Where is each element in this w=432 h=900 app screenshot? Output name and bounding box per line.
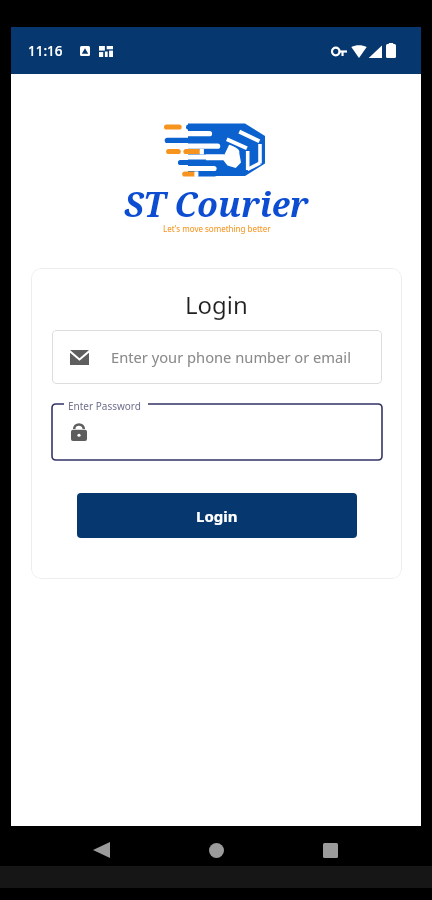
staticText: Enter Password — [68, 399, 141, 413]
staticText: Login — [196, 506, 238, 526]
staticText: Enter your phone number or email — [111, 347, 351, 367]
button[interactable]: Login — [77, 493, 357, 538]
button[interactable]: Back — [77, 826, 125, 874]
button[interactable]: Enter your phone number or email — [52, 330, 382, 384]
staticText: ST Courier — [124, 181, 309, 227]
button[interactable]: Recent apps — [306, 826, 354, 874]
button[interactable]: Home — [192, 826, 240, 874]
staticText: Login — [185, 288, 248, 321]
staticText: Let's move something better — [163, 223, 271, 234]
staticText: 11:16 — [28, 42, 63, 60]
